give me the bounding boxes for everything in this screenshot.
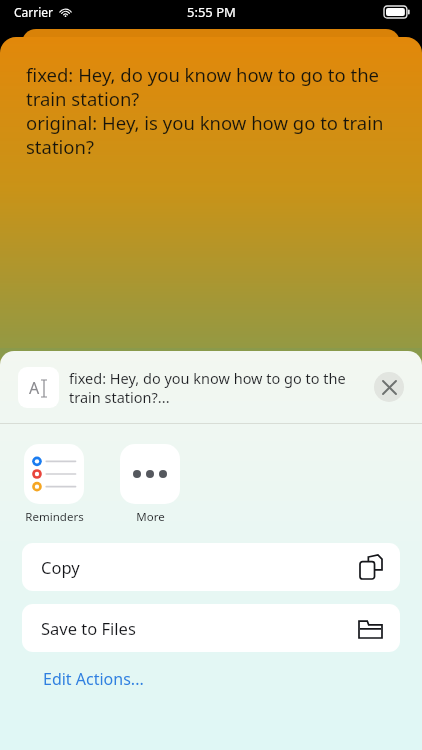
staticText: 5:55 PM bbox=[187, 3, 236, 21]
button[interactable]: Reminders bbox=[20, 444, 88, 525]
staticText: fixed: Hey, do you know how to go to the… bbox=[69, 368, 366, 407]
button[interactable]: More bbox=[116, 444, 184, 525]
button[interactable]: Edit Actions... bbox=[41, 662, 146, 696]
staticText: More bbox=[136, 509, 165, 525]
staticText: Copy bbox=[41, 556, 80, 578]
button[interactable]: Copy bbox=[22, 543, 400, 591]
staticText: Save to Files bbox=[41, 617, 136, 639]
staticText: fixed: Hey, do you know how to go to the… bbox=[26, 62, 396, 159]
staticText: Reminders bbox=[25, 509, 84, 525]
staticText: Carrier bbox=[14, 4, 54, 20]
staticText: A bbox=[29, 377, 40, 399]
button[interactable]: Save to Files bbox=[22, 604, 400, 652]
staticText: Edit Actions... bbox=[43, 668, 144, 690]
button[interactable]: Close bbox=[374, 372, 404, 402]
